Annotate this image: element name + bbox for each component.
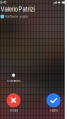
button[interactable]: Ricordamelo xyxy=(0,73,29,82)
staticText: Accetta xyxy=(49,109,57,112)
staticText: Ricordamelo xyxy=(7,79,20,82)
staticText: 9:41 xyxy=(0,0,6,5)
button[interactable]: Accetta xyxy=(37,93,67,112)
staticText: Valerio Patrizi xyxy=(0,6,34,13)
button[interactable]: Rifiuta xyxy=(0,93,29,112)
staticText: Raffaele audio xyxy=(5,15,28,18)
staticText: Rifiuta xyxy=(9,109,17,112)
